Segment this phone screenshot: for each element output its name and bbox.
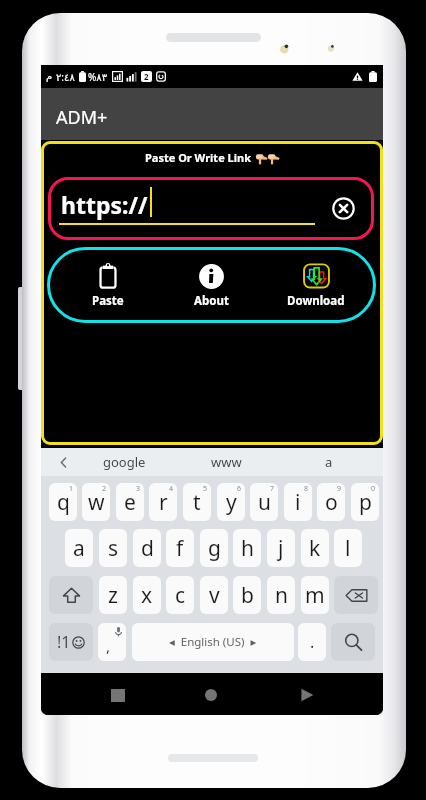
- button[interactable]: h: [233, 529, 261, 567]
- staticText: ◂ English (US) ▸: [169, 634, 257, 650]
- button[interactable]: b: [233, 576, 261, 614]
- button[interactable]: l: [334, 529, 362, 567]
- staticText: p: [359, 488, 372, 517]
- staticText: 0: [371, 484, 376, 494]
- staticText: q: [57, 488, 70, 517]
- button[interactable]: 1: [49, 483, 77, 521]
- staticText: o: [325, 488, 338, 517]
- staticText: e: [124, 488, 136, 517]
- staticText: r: [159, 488, 168, 517]
- button[interactable]: 2: [82, 483, 110, 521]
- staticText: v: [209, 581, 220, 610]
- staticText: م: [46, 71, 53, 83]
- staticText: ,: [106, 636, 111, 656]
- button[interactable]: g: [200, 529, 228, 567]
- staticText: z: [108, 581, 118, 610]
- button[interactable]: 8: [284, 483, 312, 521]
- button[interactable]: a: [288, 448, 370, 476]
- staticText: g: [208, 534, 221, 563]
- button[interactable]: 0: [351, 483, 379, 521]
- button[interactable]: Backspace: [334, 576, 378, 614]
- button[interactable]: f: [166, 529, 194, 567]
- staticText: n: [275, 581, 288, 610]
- button[interactable]: Home: [189, 675, 233, 715]
- staticText: 4: [169, 484, 174, 494]
- button[interactable]: 9: [317, 483, 345, 521]
- staticText: y: [226, 488, 237, 517]
- staticText: Paste: [92, 293, 124, 309]
- button[interactable]: Search: [331, 623, 375, 661]
- staticText: www: [211, 453, 242, 471]
- staticText: google: [103, 453, 146, 471]
- button[interactable]: Download: [280, 255, 352, 315]
- staticText: k: [309, 534, 321, 563]
- staticText: i: [295, 488, 301, 517]
- staticText: 7: [270, 484, 275, 494]
- staticText: 6: [237, 484, 242, 494]
- staticText: %٨٣: [88, 70, 108, 84]
- staticText: 9: [337, 484, 342, 494]
- staticText: d: [141, 534, 154, 563]
- staticText: Download: [287, 293, 345, 309]
- button[interactable]: 6: [217, 483, 245, 521]
- button[interactable]: x: [133, 576, 161, 614]
- staticText: m: [305, 581, 325, 610]
- staticText: Paste Or Write Link: [145, 150, 251, 165]
- button[interactable]: www: [185, 448, 267, 476]
- staticText: l: [345, 534, 351, 563]
- button[interactable]: Paste: [72, 255, 144, 315]
- staticText: a: [325, 453, 333, 471]
- button[interactable]: ◂ English (US) ▸: [132, 623, 294, 661]
- button[interactable]: s: [99, 529, 127, 567]
- staticText: ADM+: [56, 105, 108, 130]
- button[interactable]: 3: [116, 483, 144, 521]
- staticText: t: [193, 488, 201, 517]
- button[interactable]: n: [267, 576, 295, 614]
- button[interactable]: Recent apps: [96, 675, 140, 715]
- button[interactable]: k: [301, 529, 329, 567]
- button[interactable]: .: [298, 623, 326, 661]
- staticText: h: [241, 534, 254, 563]
- button[interactable]: ,: [98, 623, 126, 661]
- button[interactable]: About: [175, 255, 247, 315]
- staticText: b: [241, 581, 254, 610]
- staticText: 3: [136, 484, 141, 494]
- staticText: !1: [57, 631, 71, 653]
- staticText: 8: [304, 484, 309, 494]
- staticText: 2: [102, 484, 107, 494]
- staticText: f: [176, 534, 184, 563]
- staticText: j: [278, 534, 284, 563]
- button[interactable]: 5: [183, 483, 211, 521]
- staticText: .: [310, 631, 315, 653]
- staticText: 1: [69, 484, 74, 494]
- button[interactable]: Shift: [49, 576, 93, 614]
- staticText: ٢:٤٨: [56, 70, 75, 84]
- button[interactable]: z: [99, 576, 127, 614]
- button[interactable]: j: [267, 529, 295, 567]
- staticText: About: [194, 293, 229, 309]
- staticText: u: [258, 488, 271, 517]
- staticText: 5: [203, 484, 208, 494]
- staticText: s: [108, 534, 119, 563]
- button[interactable]: Forward: [285, 675, 329, 715]
- button[interactable]: v: [200, 576, 228, 614]
- button[interactable]: d: [133, 529, 161, 567]
- staticText: 2: [144, 71, 149, 82]
- button[interactable]: m: [301, 576, 329, 614]
- button[interactable]: 7: [250, 483, 278, 521]
- button[interactable]: Clear text: [329, 194, 357, 222]
- staticText: a: [73, 534, 85, 563]
- staticText: https://: [61, 189, 148, 220]
- staticText: w: [88, 488, 105, 517]
- staticText: x: [141, 581, 153, 610]
- button[interactable]: !1: [49, 623, 93, 661]
- button[interactable]: a: [65, 529, 93, 567]
- button[interactable]: c: [166, 576, 194, 614]
- button[interactable]: Previous suggestions: [44, 448, 82, 476]
- button[interactable]: https://: [48, 177, 374, 240]
- button[interactable]: 4: [149, 483, 177, 521]
- button[interactable]: google: [83, 448, 165, 476]
- staticText: c: [175, 581, 186, 610]
